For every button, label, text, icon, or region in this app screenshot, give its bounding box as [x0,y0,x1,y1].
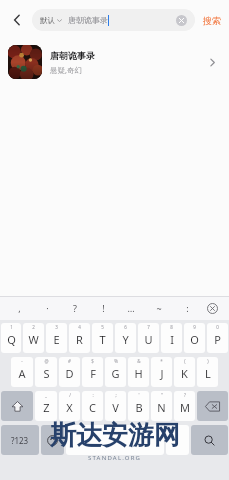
button[interactable]: % [105,357,126,387]
button[interactable]: 5 [92,323,113,353]
staticText: ?123 [11,435,29,446]
button[interactable]: 0 [207,323,228,353]
button[interactable]: ? [174,391,195,421]
staticText: 9 [193,324,196,330]
staticText: · [46,302,49,314]
button[interactable]: 7 [138,323,159,353]
staticText: ? [184,392,186,398]
staticText: S [43,366,50,381]
button[interactable]: 唐朝诡事录 [0,40,229,84]
staticText: . [176,433,179,447]
button[interactable]: Clear [176,15,187,26]
staticText: Y [122,332,129,347]
staticText: J [160,366,164,381]
button[interactable]: ) [197,357,218,387]
button[interactable]: 3 [46,323,67,353]
button[interactable]: ! [89,296,117,320]
button[interactable]: " [151,391,172,421]
staticText: 默认 [40,16,55,25]
staticText: ) [207,358,209,364]
staticText: 1 [10,324,13,330]
other: Open [203,53,221,71]
staticText: 0 [216,324,219,330]
staticText: E [53,332,60,347]
staticText: & [137,358,141,364]
button[interactable]: # [59,357,80,387]
button[interactable]: $ [82,357,103,387]
staticText: ? [73,302,77,314]
staticText: * [160,358,163,364]
button[interactable]: . [166,425,189,455]
staticText: STANDAL.ORG [88,454,142,462]
staticText: ~ [156,302,162,314]
button[interactable]: : [82,391,103,421]
button[interactable]: Delete [201,296,223,320]
button[interactable]: 2 [23,323,44,353]
button[interactable]: ?123 [1,425,39,455]
staticText: 5 [101,324,104,330]
staticText: P [214,332,221,347]
staticText: 唐朝诡事录 [68,15,108,25]
staticText: - [21,358,23,364]
staticText: ' [138,392,140,398]
button[interactable]: 9 [184,323,205,353]
staticText: O [190,332,199,347]
button[interactable]: & [128,357,149,387]
button[interactable]: 8 [161,323,182,353]
button[interactable]: · [33,296,61,320]
button[interactable]: ; [105,391,126,421]
button[interactable]: , [6,296,33,320]
button[interactable]: Emoji [41,425,64,455]
staticText: / [69,392,71,398]
button[interactable]: : [173,296,201,320]
button[interactable]: 1 [1,323,21,353]
staticText: # [68,358,71,364]
staticText: 2 [32,324,35,330]
staticText: V [112,400,119,415]
button[interactable]: 6 [115,323,136,353]
button[interactable]: - [11,357,33,387]
staticText: 8 [170,324,173,330]
button[interactable]: ~ [145,296,173,320]
button[interactable]: ' [128,391,149,421]
staticText: : [92,392,94,398]
staticText: D [65,366,74,381]
button[interactable]: Shift [1,391,33,421]
button[interactable]: * [151,357,172,387]
button[interactable]: 搜索 [201,11,223,30]
staticText: 搜索 [203,15,221,26]
staticText: N [157,400,166,415]
staticText: F [90,366,96,381]
button[interactable]: Backspace [197,391,228,421]
staticText: ( [184,358,186,364]
staticText: ; [115,392,117,398]
button[interactable]: ( [174,357,195,387]
staticText: B [135,400,143,415]
staticText: W [28,332,39,347]
staticText: , [18,302,21,314]
button[interactable]: … [117,296,145,320]
button[interactable]: Search [191,425,228,455]
button[interactable]: Space [66,425,164,455]
staticText: C [89,400,96,415]
staticText: L [205,366,211,381]
staticText: H [134,366,143,381]
staticText: T [99,332,106,347]
staticText: 斯达安游网 [50,419,180,452]
button[interactable]: / [59,391,80,421]
button[interactable]: Back [6,9,28,31]
staticText: " [161,392,163,398]
staticText: $ [91,358,94,364]
staticText: I [170,332,174,347]
button[interactable]: ? [61,296,89,320]
button[interactable]: 4 [69,323,90,353]
staticText: 7 [147,324,150,330]
staticText: Q [7,332,16,347]
button[interactable]: _ [35,391,57,421]
button[interactable]: @ [35,357,57,387]
staticText: ! [102,302,105,314]
staticText: @ [44,358,49,364]
staticText: % [114,358,118,364]
button[interactable]: 默认 [32,9,195,31]
staticText: : [186,302,189,314]
